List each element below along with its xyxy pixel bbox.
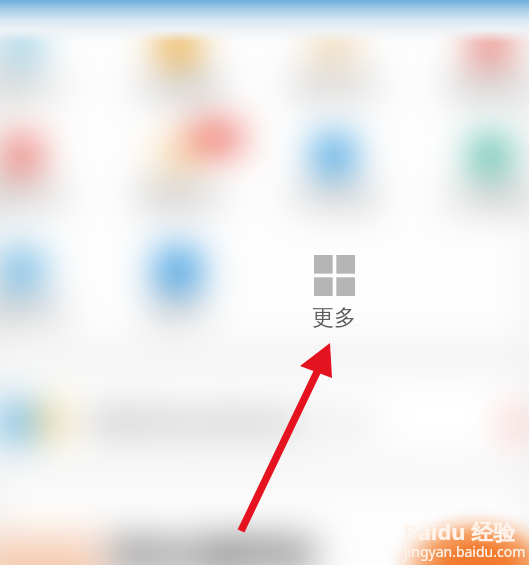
button[interactable]: [116, 115, 240, 215]
button[interactable]: [116, 230, 240, 330]
button[interactable]: [428, 115, 529, 215]
staticText: 手机充值: [294, 184, 374, 209]
button[interactable]: [272, 5, 396, 105]
staticText: 更多: [312, 304, 356, 332]
button[interactable]: [0, 115, 84, 215]
staticText: 我的账单: [450, 74, 529, 99]
staticText: 查看更多银行服务信息: [86, 410, 296, 436]
staticText: 信用卡: [148, 298, 208, 323]
staticText: Baidu 经验: [403, 516, 516, 546]
button[interactable]: [116, 5, 240, 105]
staticText: 生活缴费: [138, 74, 218, 99]
button[interactable]: [428, 5, 529, 105]
button[interactable]: 查看更多银行服务信息: [0, 382, 529, 462]
staticText: 生活服务: [450, 184, 529, 209]
staticText: 理财产品: [0, 184, 62, 209]
staticText: 充值中心: [0, 74, 62, 99]
button[interactable]: [0, 230, 84, 330]
staticText: jingyan.baidu.com: [404, 542, 526, 561]
button[interactable]: [0, 5, 84, 105]
staticText: 更多优惠等您: [110, 534, 314, 565]
button[interactable]: [272, 115, 396, 215]
button[interactable]: 更多: [294, 255, 374, 332]
staticText: 信用卡还: [294, 74, 374, 99]
staticText: 转账汇款: [0, 298, 62, 323]
staticText: 优惠活动: [138, 184, 218, 209]
